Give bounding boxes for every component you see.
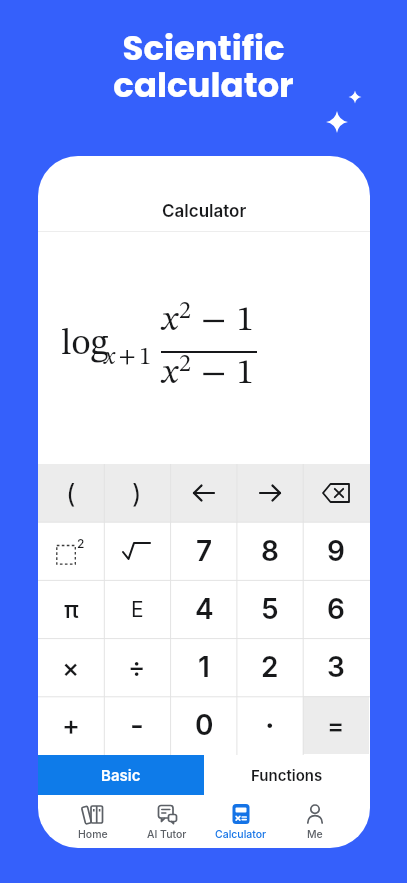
button[interactable]: π [38,580,104,638]
button[interactable]: Functions [204,755,370,795]
staticText: Scientific calculator [0,24,407,109]
staticText: × [62,652,80,683]
staticText: AI Tutor [147,828,187,841]
button[interactable] [171,464,237,522]
button[interactable] [303,464,369,522]
button[interactable]: Basic [38,755,204,795]
staticText: · [265,707,275,743]
button[interactable]: Calculator [204,803,278,848]
button[interactable]: 1 [171,638,237,696]
button[interactable]: - [104,696,170,754]
button[interactable]: Home [56,803,130,848]
staticText: 2 [77,536,85,551]
button[interactable]: ÷ [104,638,170,696]
staticText: Calculator [215,828,267,841]
button[interactable]: + [38,696,104,754]
button[interactable]: 2 [237,638,303,696]
button[interactable]: Calculator [38,156,370,231]
staticText: - [130,707,144,743]
staticText: Functions [251,766,323,784]
staticText: 6 [327,592,345,626]
staticText: 8 [261,534,279,568]
staticText: 1 [198,650,210,684]
staticText: Me [307,828,323,841]
button[interactable]: E [104,580,170,638]
staticText: ) [132,478,142,509]
button[interactable]: ) [104,464,170,522]
staticText: 4 [195,592,214,626]
button[interactable]: × [38,638,104,696]
button[interactable]: 6 [303,580,369,638]
staticText: 5 [261,592,279,626]
staticText: + [62,709,81,742]
button[interactable] [237,464,303,522]
staticText: x2 − 1 [162,300,256,338]
staticText: 2 [261,650,279,684]
staticText: Basic [101,766,141,784]
button[interactable]: 8 [237,522,303,580]
button[interactable]: 4 [171,580,237,638]
staticText: 0 [195,708,214,742]
button[interactable]: Me [278,803,352,848]
button[interactable]: · [237,696,303,754]
staticText: x2 − 1 [162,353,256,391]
staticText: x + 1 [104,346,153,370]
button[interactable] [104,522,170,580]
staticText: 3 [327,650,345,684]
staticText: log [61,326,109,363]
button[interactable]: 0 [171,696,237,754]
staticText: E [131,597,144,622]
staticText: ( [66,478,76,509]
button[interactable]: AI Tutor [130,803,204,848]
button[interactable]: 3 [303,638,369,696]
button[interactable]: 2 [38,522,104,580]
staticText: Calculator [162,201,247,222]
button[interactable]: 7 [171,522,237,580]
staticText: ÷ [128,652,146,683]
button[interactable]: = [303,696,369,754]
staticText: 9 [327,534,345,568]
button[interactable]: ( [38,464,104,522]
button[interactable]: 9 [303,522,369,580]
staticText: π [64,595,79,624]
staticText: 7 [196,534,213,568]
staticText: Home [78,828,108,841]
staticText: = [327,710,345,741]
button[interactable]: 5 [237,580,303,638]
